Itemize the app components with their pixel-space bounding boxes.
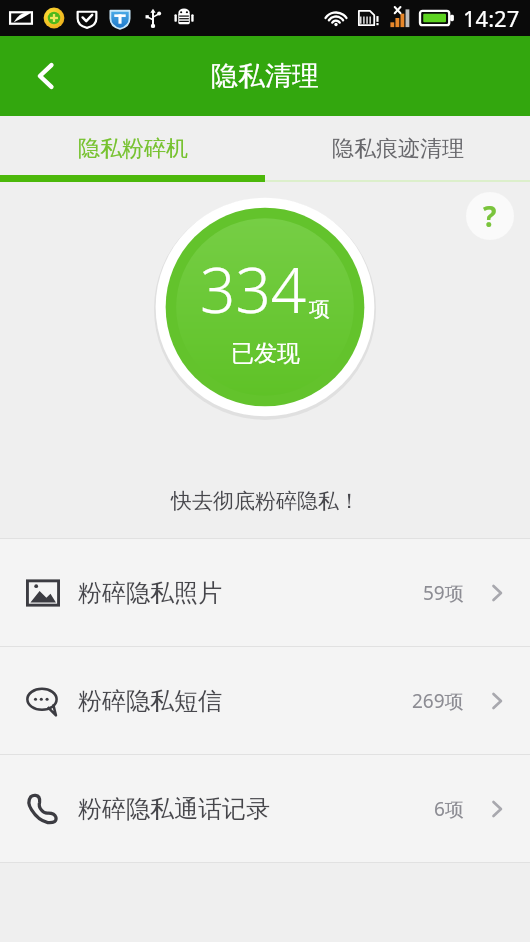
staticText: 隐私清理 xyxy=(211,59,319,93)
staticText: 项 xyxy=(309,296,330,322)
button[interactable]: 粉碎隐私照片 xyxy=(0,539,530,646)
staticText: 269项 xyxy=(412,688,464,714)
staticText: 14:27 xyxy=(463,3,520,33)
staticText: 粉碎隐私通话记录 xyxy=(78,794,270,824)
button[interactable]: 隐私痕迹清理 xyxy=(265,116,530,182)
staticText: 已发现 xyxy=(231,339,300,368)
staticText: 59项 xyxy=(423,580,464,606)
staticText: 334 xyxy=(200,247,307,331)
button[interactable]: 粉碎隐私短信 xyxy=(0,647,530,754)
button[interactable]: 粉碎隐私通话记录 xyxy=(0,755,530,862)
staticText: 快去彻底粉碎隐私！ xyxy=(171,488,360,514)
button[interactable]: 334 xyxy=(154,196,376,418)
button[interactable]: Back xyxy=(0,36,92,116)
staticText: 粉碎隐私照片 xyxy=(78,578,222,608)
button[interactable]: 隐私粉碎机 xyxy=(0,116,265,182)
button[interactable]: Help xyxy=(466,192,514,240)
staticText: 6项 xyxy=(434,796,464,822)
staticText: ? xyxy=(483,197,497,235)
staticText: 隐私粉碎机 xyxy=(78,135,188,163)
staticText: 隐私痕迹清理 xyxy=(332,135,464,163)
staticText: 粉碎隐私短信 xyxy=(78,686,222,716)
